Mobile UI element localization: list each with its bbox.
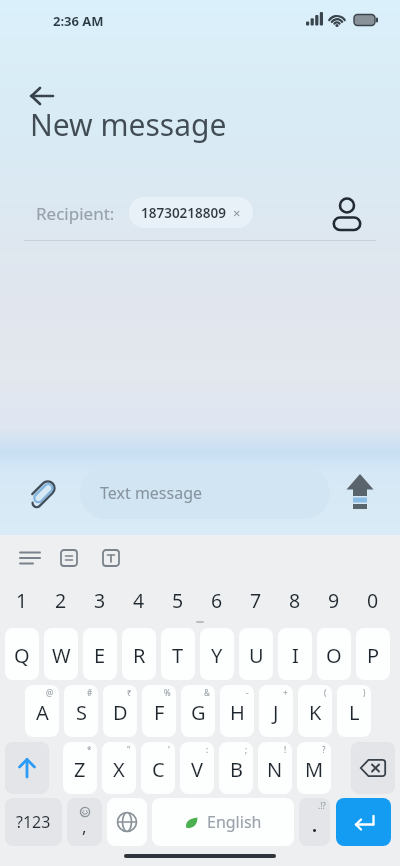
staticText: + [283,687,288,698]
button[interactable]: J [259,685,293,737]
button[interactable]: 5 [161,578,195,622]
button[interactable]: P [356,628,390,680]
staticText: S [76,699,87,726]
button[interactable] [96,544,126,572]
button[interactable] [351,742,395,794]
button[interactable]: .!? [299,798,330,846]
staticText: # [87,687,93,698]
staticText: W [52,642,71,669]
button[interactable]: W [44,628,78,680]
staticText: New message [30,104,227,145]
staticText: ! [284,744,287,755]
staticText: O [326,642,342,669]
button[interactable]: K [298,685,332,737]
button[interactable]: 6 [200,578,234,622]
button[interactable]: V [180,742,214,794]
button[interactable]: , [67,798,102,846]
button[interactable] [12,544,48,572]
staticText: I [292,642,299,669]
button[interactable]: Q [5,628,39,680]
button[interactable]: G [181,685,215,737]
staticText: & [204,687,210,698]
staticText: .!? [318,800,326,811]
button[interactable]: T [161,628,195,680]
staticText: R [133,642,146,669]
staticText: " [127,744,131,755]
staticText: 1 [16,587,28,614]
button[interactable]: Text message [80,467,330,519]
button[interactable] [54,544,84,572]
staticText: 2 [55,587,67,614]
button[interactable]: 7 [239,578,273,622]
button[interactable]: R [122,628,156,680]
staticText: ' [168,744,170,755]
staticText: P [367,642,380,669]
staticText: 2:36 AM [53,12,104,30]
button[interactable]: D [103,685,137,737]
button[interactable]: 0 [356,578,390,622]
button[interactable]: B [219,742,253,794]
button[interactable] [327,190,367,234]
staticText: 3 [94,587,106,614]
staticText: D [113,699,128,726]
button[interactable] [107,798,147,846]
staticText: J [273,699,279,726]
staticText: × [233,204,241,222]
button[interactable]: 2 [44,578,78,622]
staticText: ( [324,687,327,698]
button[interactable]: Z [63,742,97,794]
button[interactable]: C [141,742,175,794]
staticText: Y [211,642,223,669]
staticText: % [164,687,171,698]
button[interactable] [22,78,62,114]
staticText: F [154,699,165,726]
staticText: : [206,744,209,755]
staticText: C [152,756,165,783]
button[interactable]: O [317,628,351,680]
button[interactable]: English [152,798,294,846]
staticText: . [312,813,318,838]
button[interactable]: M [297,742,331,794]
staticText: Text message [100,482,203,504]
button[interactable]: F [142,685,176,737]
staticText: , [82,815,87,838]
button[interactable]: X [102,742,136,794]
staticText: A [36,699,49,726]
button[interactable]: 8 [278,578,312,622]
button[interactable]: H [220,685,254,737]
staticText: ?123 [16,811,51,833]
button[interactable]: 18730218809 [129,197,253,228]
button[interactable] [340,462,384,518]
button[interactable]: A [25,685,59,737]
button[interactable]: I [278,628,312,680]
staticText: ? [322,744,326,755]
staticText: K [309,699,322,726]
staticText: English [207,811,262,833]
staticText: * [87,744,92,755]
staticText: ₹ [127,687,132,698]
staticText: H [230,699,245,726]
button[interactable] [5,742,49,794]
button[interactable]: 9 [317,578,351,622]
staticText: E [94,642,106,669]
staticText: T [172,642,184,669]
button[interactable]: 1 [5,578,39,622]
button[interactable] [336,798,391,846]
staticText: 8 [289,587,301,614]
staticText: 9 [328,587,340,614]
staticText: ) [363,687,366,698]
staticText: B [230,756,243,783]
staticText: Recipient: [36,202,115,225]
button[interactable]: N [258,742,292,794]
button[interactable]: U [239,628,273,680]
staticText: 18730218809 [141,204,226,222]
button[interactable]: 4 [122,578,156,622]
button[interactable]: 3 [83,578,117,622]
button[interactable]: ?123 [5,798,62,846]
button[interactable] [17,468,67,520]
staticText: U [249,642,264,669]
button[interactable]: L [337,685,371,737]
button[interactable]: E [83,628,117,680]
button[interactable]: S [64,685,98,737]
button[interactable]: Y [200,628,234,680]
